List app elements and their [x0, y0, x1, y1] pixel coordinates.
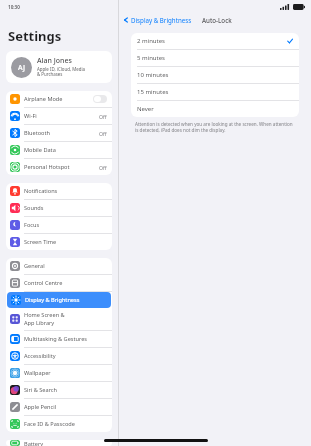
button[interactable]: Personal Hotspot	[6, 159, 112, 175]
staticText: Sounds	[24, 204, 44, 212]
staticText: Personal Hotspot	[24, 163, 70, 171]
staticText: Multitasking & Gestures	[24, 335, 88, 343]
button[interactable]: Screen Time	[6, 234, 112, 250]
staticText: Apple Pencil	[24, 403, 57, 411]
staticText: Off	[99, 164, 107, 171]
staticText: Focus	[24, 221, 40, 229]
button[interactable]: Never	[131, 101, 299, 117]
staticText: Face ID & Passcode	[24, 420, 75, 428]
staticText: 15 minutes	[137, 88, 293, 96]
staticText: AJ	[18, 63, 25, 73]
button[interactable]: Battery	[6, 440, 112, 446]
staticText: Attention is detected when you are looki…	[135, 121, 295, 133]
staticText: Off	[99, 113, 107, 120]
staticText: Bluetooth	[24, 129, 50, 137]
button[interactable]: Airplane Mode	[6, 91, 112, 107]
staticText: Notifications	[24, 187, 58, 195]
staticText: 2 minutes	[137, 37, 287, 45]
staticText: App Library	[24, 319, 55, 327]
staticText: Mobile Data	[24, 146, 56, 154]
staticText: Display & Brightness	[25, 296, 80, 304]
button[interactable]: 10 minutes	[131, 67, 299, 83]
staticText: Wi-Fi	[24, 112, 37, 120]
staticText: Display & Brightness	[131, 16, 192, 24]
staticText: Siri & Search	[24, 386, 57, 394]
button[interactable]: Display & Brightness	[7, 292, 111, 308]
button[interactable]: Siri & Search	[6, 382, 112, 398]
staticText: 10:30	[8, 4, 20, 10]
staticText: Alan Jones	[37, 56, 72, 66]
staticText: Battery	[24, 440, 44, 446]
button[interactable]: Control Centre	[6, 275, 112, 291]
staticText: 10 minutes	[137, 71, 293, 79]
staticText: 5 minutes	[137, 54, 293, 62]
staticText: General	[24, 262, 45, 270]
button[interactable]: Face ID & Passcode	[6, 416, 112, 432]
staticText: Control Centre	[24, 279, 63, 287]
button[interactable]: Wallpaper	[6, 365, 112, 381]
staticText: Settings	[8, 27, 62, 45]
staticText: Never	[137, 105, 293, 113]
button[interactable]: Accessibility	[6, 348, 112, 364]
button[interactable]: Apple Pencil	[6, 399, 112, 415]
button[interactable]: Sounds	[6, 200, 112, 216]
button[interactable]: Home Screen &	[6, 308, 112, 330]
button[interactable]: Bluetooth	[6, 125, 112, 141]
button[interactable]: Notifications	[6, 183, 112, 199]
staticText: Accessibility	[24, 352, 56, 360]
staticText: Home Screen &	[24, 311, 65, 319]
button[interactable]: Wi-Fi	[6, 108, 112, 124]
button[interactable]: Multitasking & Gestures	[6, 331, 112, 347]
button[interactable]: Mobile Data	[6, 142, 112, 158]
staticText: Wallpaper	[24, 369, 51, 377]
button[interactable]: Back to Display & Brightness	[119, 16, 196, 24]
staticText: Screen Time	[24, 238, 57, 246]
button[interactable]: 2 minutes	[131, 33, 299, 49]
button[interactable]: AJ	[6, 51, 112, 83]
staticText: Auto-Lock	[202, 16, 232, 24]
button[interactable]: General	[6, 258, 112, 274]
staticText: Airplane Mode	[24, 95, 63, 103]
staticText: Off	[99, 130, 107, 137]
button[interactable]: 15 minutes	[131, 84, 299, 100]
staticText: Apple ID, iCloud, Media & Purchases	[37, 66, 85, 78]
button[interactable]: 5 minutes	[131, 50, 299, 66]
button[interactable]: Focus	[6, 217, 112, 233]
